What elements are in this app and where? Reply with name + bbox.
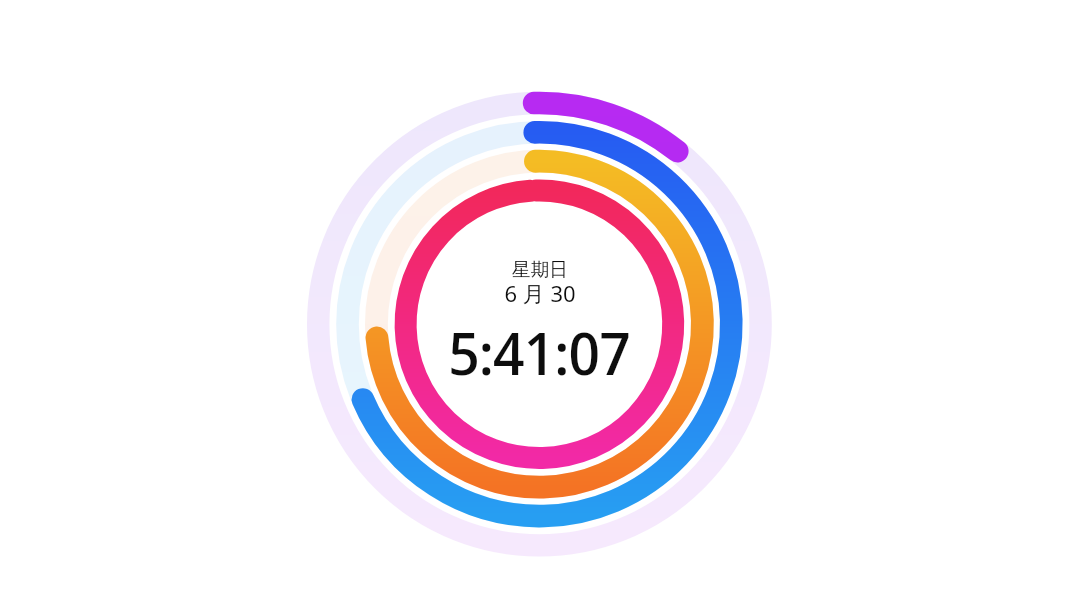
staticText: 星期日 <box>512 258 568 281</box>
staticText: 5:41:07 <box>448 312 630 392</box>
button[interactable]: Activity rings watch face <box>0 0 1068 606</box>
staticText: 6 月 30 <box>504 278 576 308</box>
